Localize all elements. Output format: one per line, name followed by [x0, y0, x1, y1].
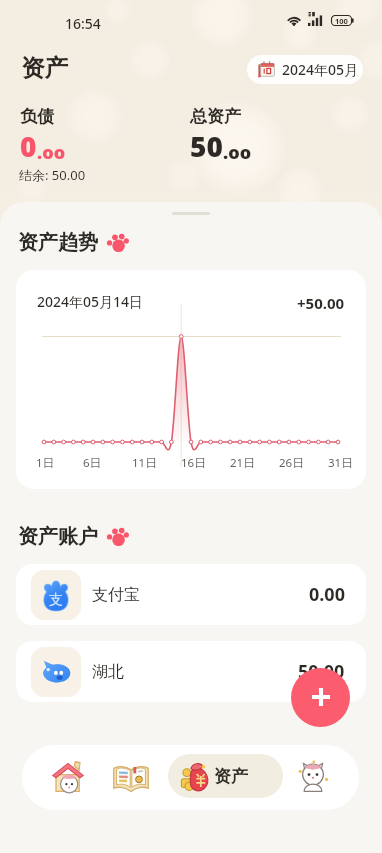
- staticText: 100: [335, 16, 348, 26]
- staticText: 21日: [230, 455, 255, 471]
- staticText: 资产: [214, 766, 248, 787]
- staticText: 总资产: [190, 106, 241, 127]
- staticText: 2024年05月14日: [37, 292, 144, 311]
- staticText: 6日: [83, 455, 102, 471]
- button[interactable]: 2024年05月: [247, 55, 363, 84]
- staticText: 0: [20, 127, 37, 165]
- button[interactable]: 支: [16, 564, 366, 625]
- staticText: 资产: [21, 53, 68, 83]
- staticText: 资产账户: [18, 524, 98, 549]
- staticText: 50: [190, 127, 223, 165]
- staticText: .oo: [37, 140, 66, 165]
- staticText: 0.00: [309, 582, 345, 607]
- button[interactable]: Add account: [291, 668, 350, 727]
- staticText: .oo: [223, 140, 252, 165]
- staticText: 31日: [328, 455, 353, 471]
- staticText: 结余: 50.00: [19, 166, 86, 184]
- staticText: 1日: [36, 455, 55, 471]
- staticText: 2024年05月: [282, 60, 359, 79]
- staticText: 11日: [132, 455, 157, 471]
- staticText: 支: [49, 591, 63, 609]
- button[interactable]: 湖北: [16, 641, 366, 702]
- button[interactable]: Ledger: [111, 757, 151, 797]
- staticText: 50.00: [298, 659, 345, 684]
- button[interactable]: Profile: [293, 757, 333, 797]
- staticText: 支付宝: [92, 585, 140, 605]
- staticText: 26日: [279, 455, 304, 471]
- button[interactable]: 资产: [168, 754, 283, 798]
- staticText: 湖北: [92, 662, 124, 682]
- staticText: +50.00: [297, 293, 345, 313]
- staticText: 16:54: [65, 14, 101, 33]
- staticText: 资产趋势: [18, 230, 98, 255]
- button[interactable]: Home: [48, 757, 88, 797]
- staticText: 16日: [181, 455, 206, 471]
- button[interactable]: 2024年05月14日: [16, 270, 366, 489]
- staticText: 负债: [20, 106, 54, 127]
